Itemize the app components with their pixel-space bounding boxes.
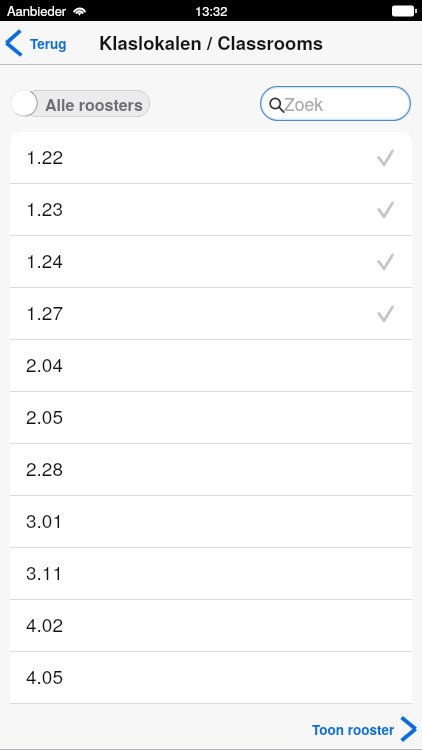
button[interactable]: Alle roosters <box>10 89 136 117</box>
staticText: 2.28 <box>26 454 63 481</box>
staticText: Zoek <box>284 91 323 116</box>
staticText: 1.27 <box>26 298 63 325</box>
staticText: 3.11 <box>26 558 63 585</box>
staticText: 4.05 <box>26 662 63 689</box>
staticText: 1.23 <box>26 194 63 221</box>
button[interactable]: 1.23 <box>10 184 412 236</box>
button[interactable]: Terug <box>5 21 67 65</box>
button[interactable]: 1.27 <box>10 288 412 340</box>
button[interactable]: 3.11 <box>10 548 412 600</box>
button[interactable]: 4.02 <box>10 600 412 652</box>
button[interactable]: 2.05 <box>10 392 412 444</box>
staticText: Alle roosters <box>45 93 143 116</box>
button[interactable]: Toon rooster <box>312 708 417 750</box>
staticText: Toon rooster <box>312 720 395 739</box>
staticText: Klaslokalen / Classrooms <box>99 29 324 55</box>
staticText: 3.01 <box>26 506 63 533</box>
button[interactable]: 1.22 <box>10 132 412 184</box>
staticText: Terug <box>30 34 67 53</box>
button[interactable]: 3.01 <box>10 496 412 548</box>
button[interactable]: 1.24 <box>10 236 412 288</box>
staticText: 2.04 <box>26 350 63 377</box>
staticText: 1.24 <box>26 246 63 273</box>
button[interactable]: 4.05 <box>10 652 412 704</box>
button[interactable]: 2.04 <box>10 340 412 392</box>
staticText: Aanbieder <box>7 1 67 20</box>
button[interactable]: Zoek <box>260 86 411 121</box>
staticText: 4.02 <box>26 610 63 637</box>
button[interactable]: 2.28 <box>10 444 412 496</box>
staticText: 1.22 <box>26 142 63 169</box>
staticText: 2.05 <box>26 402 63 429</box>
staticText: 13:32 <box>195 1 228 20</box>
